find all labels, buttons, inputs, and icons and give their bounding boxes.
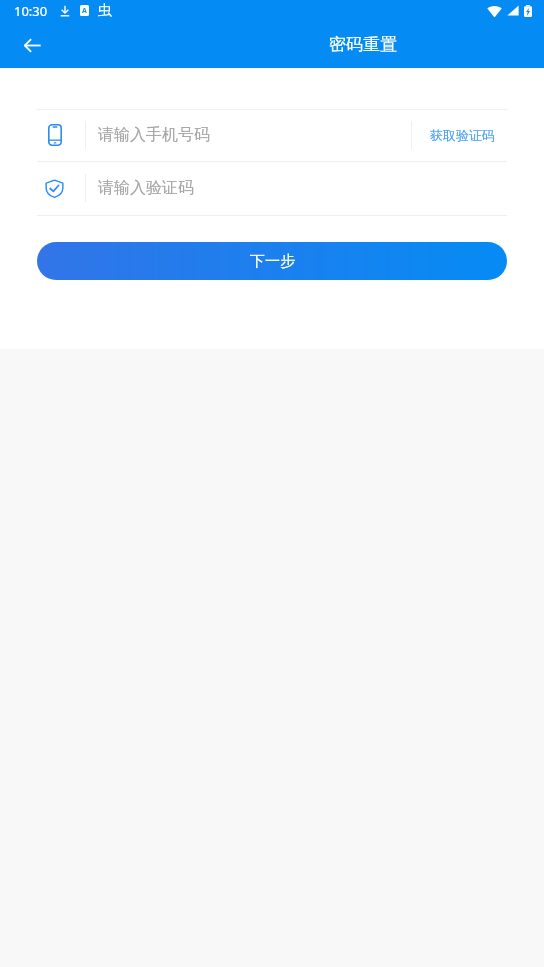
button[interactable]: 获取验证码 [412, 121, 507, 149]
staticText: 密码重置 [329, 34, 397, 55]
staticText: 10:30 [14, 2, 48, 20]
staticText: 获取验证码 [430, 127, 495, 143]
button[interactable]: 下一步 [37, 242, 507, 280]
staticText: 请输入验证码 [98, 178, 194, 198]
button[interactable]: 请输入验证码 [37, 174, 507, 202]
staticText: 下一步 [250, 252, 295, 271]
staticText: A [82, 6, 87, 16]
button[interactable]: 请输入手机号码 [37, 121, 411, 149]
staticText: 请输入手机号码 [98, 125, 210, 145]
button[interactable]: Back [10, 23, 55, 68]
staticText: 虫 [98, 2, 112, 20]
